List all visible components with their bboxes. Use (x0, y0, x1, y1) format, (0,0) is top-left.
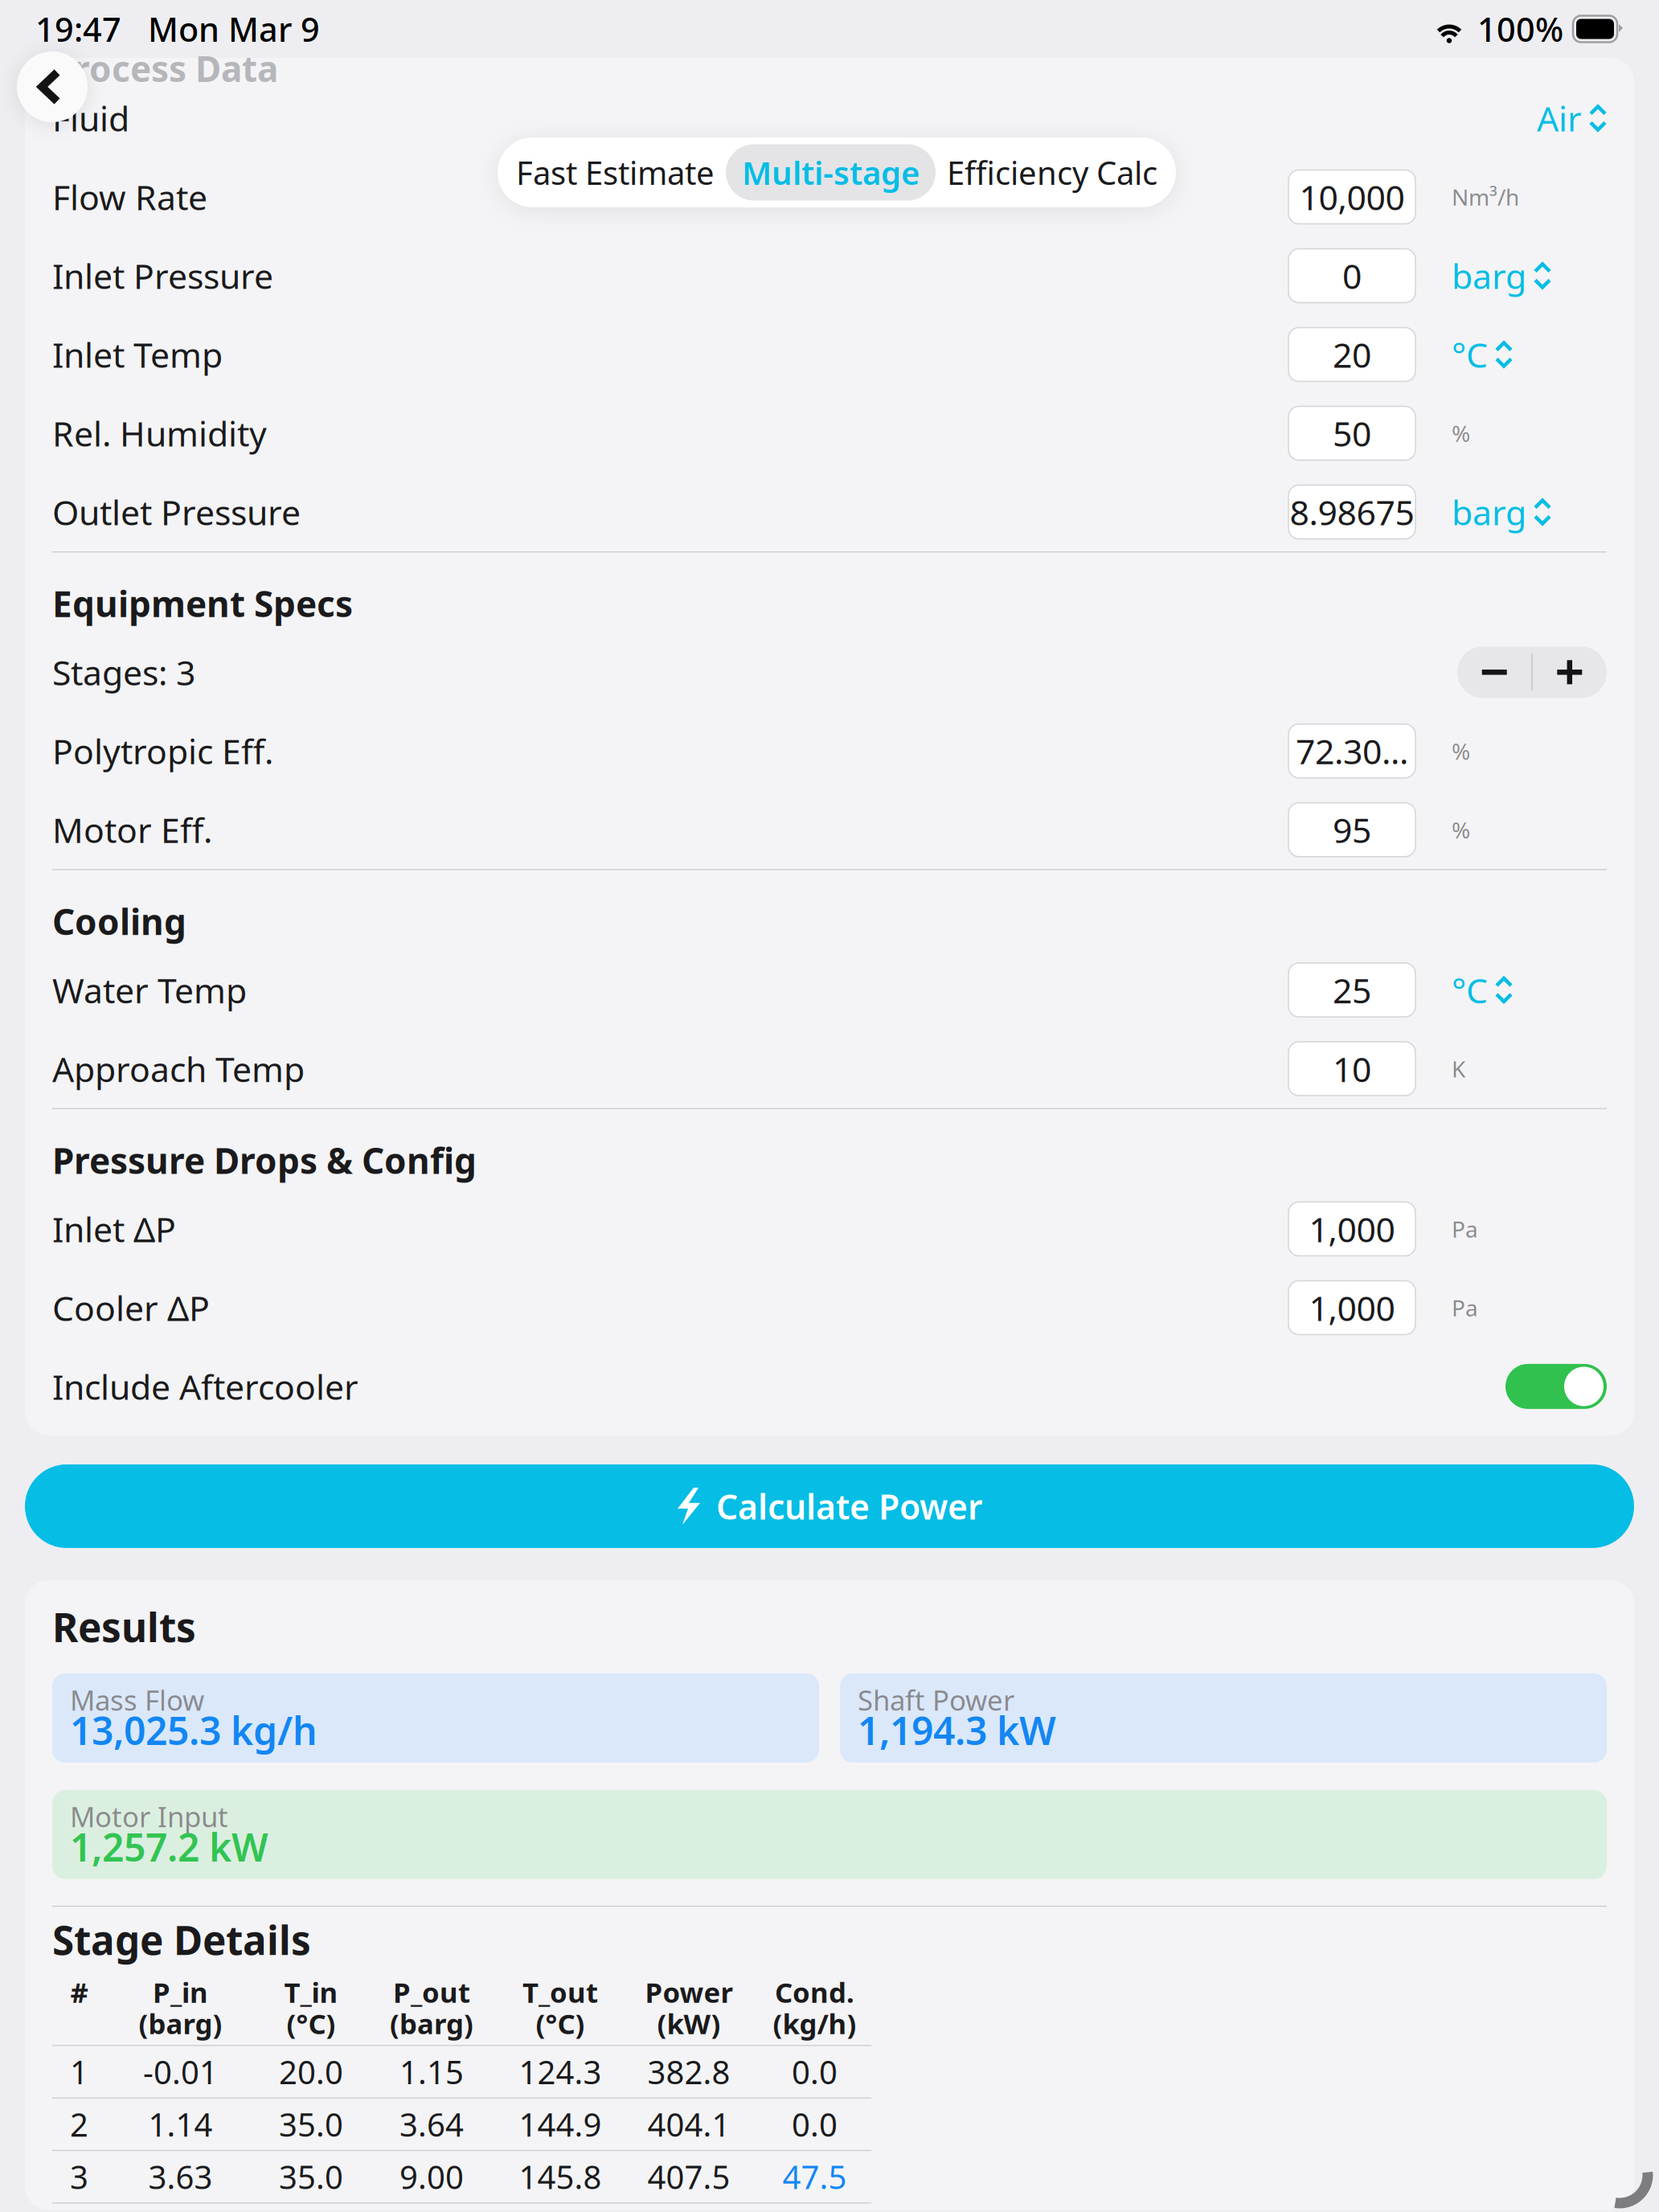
staticText: % (1452, 418, 1470, 448)
staticText: °C (1452, 332, 1488, 377)
staticText: Water Temp (52, 967, 247, 1013)
staticText: -0.01 (143, 2050, 218, 2093)
button[interactable]: °C (1452, 966, 1607, 1014)
staticText: Rel. Humidity (52, 410, 267, 456)
staticText: Pa (1452, 1293, 1478, 1323)
staticText: 50 (1333, 410, 1371, 456)
staticText: Inlet Temp (52, 332, 223, 377)
staticText: barg (1452, 489, 1526, 535)
staticText: 3 (70, 2155, 88, 2198)
staticText: Stage Details (52, 1913, 311, 1966)
button[interactable]: °C (1452, 330, 1607, 379)
staticText: Outlet Pressure (52, 489, 301, 535)
button[interactable]: Multi-stage (726, 144, 936, 201)
button[interactable]: 95 (1288, 803, 1415, 857)
staticText: P_in (153, 1973, 208, 2010)
button[interactable]: 10,000 (1288, 170, 1415, 224)
button[interactable]: Back (17, 51, 88, 122)
staticText: (barg) (390, 2005, 473, 2042)
staticText: Mass Flow (70, 1681, 204, 1718)
staticText: 0 (1342, 253, 1362, 299)
staticText: P_out (393, 1973, 470, 2010)
staticText: (barg) (139, 2005, 222, 2042)
staticText: Mon Mar 9 (121, 7, 320, 51)
staticText: Inlet ΔP (52, 1206, 176, 1252)
staticText: Stages: 3 (52, 649, 195, 695)
staticText: 100% (1477, 7, 1563, 51)
button[interactable]: 72.30... (1288, 724, 1415, 778)
staticText: Shaft Power (858, 1681, 1014, 1718)
staticText: 145.8 (519, 2155, 602, 2198)
staticText: 13,025.3 kg/h (70, 1704, 317, 1756)
staticText: 47.5 (782, 2155, 847, 2198)
staticText: Approach Temp (52, 1046, 305, 1092)
staticText: 407.5 (647, 2155, 730, 2198)
button[interactable]: 1,000 (1288, 1281, 1415, 1335)
staticText: Cond. (775, 1973, 854, 2010)
staticText: 0.0 (792, 2103, 838, 2146)
button[interactable]: 10 (1288, 1042, 1415, 1096)
staticText: Fluid (52, 95, 129, 141)
staticText: 1,000 (1309, 1206, 1395, 1252)
button[interactable]: Calculate Power (25, 1464, 1634, 1548)
button[interactable]: 20 (1288, 328, 1415, 381)
staticText: Air (1537, 95, 1582, 141)
staticText: 1 (70, 2050, 88, 2093)
button[interactable]: Include Aftercooler (1505, 1364, 1607, 1409)
button[interactable]: Decrease stages (1457, 646, 1531, 698)
staticText: 72.30... (1296, 728, 1408, 774)
staticText: 25 (1333, 967, 1371, 1013)
staticText: 1,257.2 kW (70, 1821, 268, 1872)
staticText: 10 (1333, 1046, 1371, 1092)
button[interactable]: Efficiency Calc (936, 144, 1169, 201)
staticText: 19:47 (35, 7, 121, 51)
staticText: Motor Input (70, 1798, 228, 1835)
staticText: T_out (522, 1973, 598, 2010)
staticText: Results (52, 1600, 196, 1653)
staticText: 404.1 (647, 2103, 730, 2146)
button[interactable]: 1,000 (1288, 1202, 1415, 1256)
button[interactable]: 8.98675 (1288, 485, 1415, 539)
staticText: 2 (70, 2103, 88, 2146)
button[interactable]: Air (1537, 94, 1607, 142)
button[interactable]: 25 (1288, 963, 1415, 1017)
staticText: Flow Rate (52, 174, 207, 220)
staticText: 3.64 (399, 2103, 464, 2146)
staticText: (kW) (657, 2005, 721, 2042)
staticText: 10,000 (1299, 174, 1405, 220)
staticText: Cooler ΔP (52, 1285, 210, 1330)
staticText: Process Data (52, 45, 278, 92)
button[interactable]: 0 (1288, 249, 1415, 303)
button[interactable]: Increase stages (1533, 646, 1607, 698)
button[interactable]: barg (1452, 252, 1607, 300)
staticText: 8.98675 (1290, 489, 1414, 535)
staticText: 35.0 (279, 2103, 343, 2146)
button[interactable]: barg (1452, 488, 1607, 536)
staticText: 95 (1333, 807, 1371, 853)
staticText: 1.15 (399, 2050, 464, 2093)
staticText: 20 (1333, 332, 1371, 377)
staticText: Calculate Power (716, 1483, 983, 1529)
staticText: Power (645, 1973, 733, 2010)
staticText: 20.0 (279, 2050, 343, 2093)
staticText: Fast Estimate (516, 151, 715, 194)
staticText: K (1452, 1054, 1465, 1084)
staticText: 3.63 (148, 2155, 213, 2198)
staticText: 124.3 (519, 2050, 602, 2093)
staticText: Cooling (52, 898, 186, 945)
staticText: (°C) (287, 2005, 336, 2042)
button[interactable]: Fast Estimate (505, 144, 726, 201)
staticText: 144.9 (519, 2103, 602, 2146)
staticText: 382.8 (647, 2050, 730, 2093)
staticText: (kg/h) (773, 2005, 856, 2042)
staticText: 35.0 (279, 2155, 343, 2198)
staticText: % (1452, 815, 1470, 845)
staticText: Polytropic Eff. (52, 728, 273, 774)
staticText: Include Aftercooler (52, 1364, 358, 1409)
staticText: Pressure Drops & Config (52, 1137, 477, 1184)
button[interactable]: 50 (1288, 406, 1415, 460)
staticText: T_in (284, 1973, 338, 2010)
staticText: % (1452, 736, 1470, 766)
staticText: barg (1452, 253, 1526, 299)
